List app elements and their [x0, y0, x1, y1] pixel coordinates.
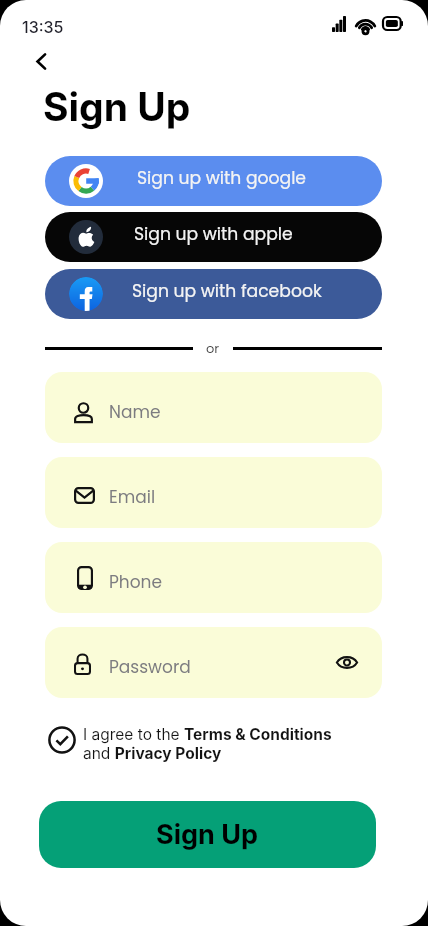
staticText: Password [109, 655, 191, 679]
button[interactable]: Email [45, 457, 382, 528]
staticText: Sign Up [43, 83, 191, 130]
button[interactable]: Show password [332, 647, 362, 677]
staticText: Name [109, 400, 161, 424]
staticText: 13:35 [22, 17, 64, 36]
button[interactable]: Sign up with apple [45, 212, 382, 262]
staticText: I agree to the Terms & Conditions and Pr… [83, 725, 332, 763]
button[interactable]: Phone [45, 542, 382, 613]
button[interactable]: I agree to the Terms & Conditions and Pr… [48, 725, 378, 763]
button[interactable]: Password [45, 627, 382, 698]
button[interactable]: Sign up with google [45, 156, 382, 206]
staticText: Sign up with facebook [132, 279, 322, 303]
staticText: Phone [109, 570, 163, 594]
staticText: Email [109, 485, 156, 509]
staticText: Sign up with apple [134, 222, 293, 246]
button[interactable]: Sign Up [39, 801, 376, 868]
staticText: Sign Up [156, 818, 259, 851]
button[interactable]: Back [25, 45, 57, 77]
staticText: or [206, 339, 220, 357]
staticText: Sign up with google [137, 166, 307, 190]
button[interactable]: Name [45, 372, 382, 443]
button[interactable]: Sign up with facebook [45, 269, 382, 319]
